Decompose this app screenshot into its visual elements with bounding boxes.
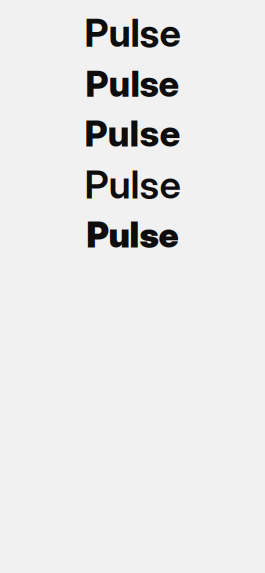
staticText: Pulse [84,161,180,208]
staticText: Pulse [84,10,180,56]
staticText: Pulse [85,62,179,106]
staticText: Pulse [86,214,178,256]
staticText: Pulse [84,111,180,155]
